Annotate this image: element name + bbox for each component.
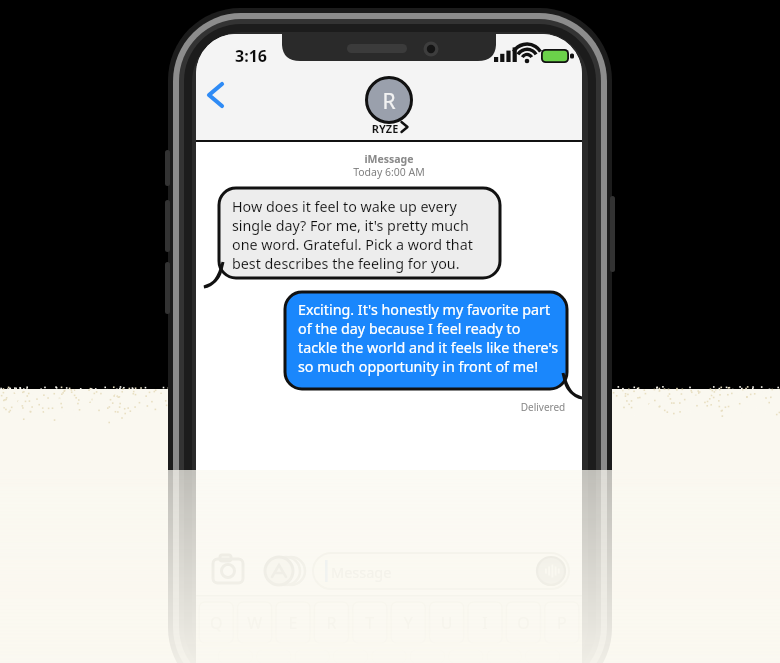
button[interactable]: iMessage conversation with RYZE [0, 0, 780, 663]
